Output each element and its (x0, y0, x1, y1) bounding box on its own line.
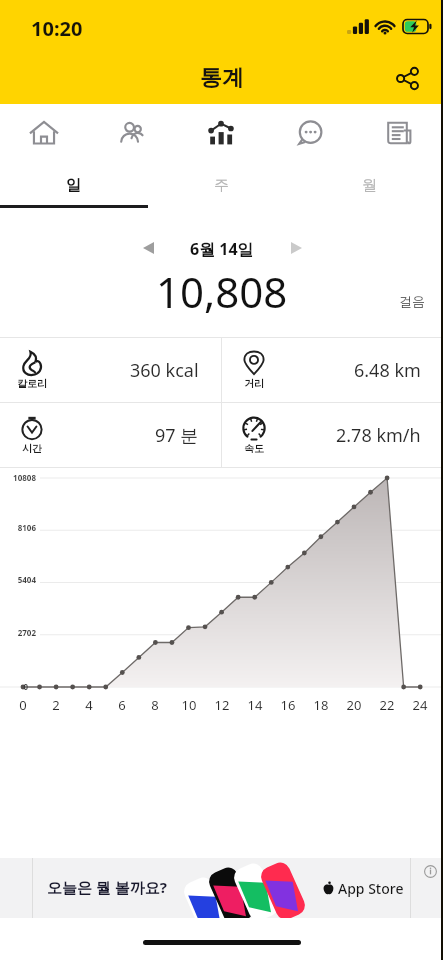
button[interactable]: 속도 (222, 403, 443, 467)
staticText: 2.78 km/h (336, 423, 421, 448)
button[interactable]: 시간 (0, 403, 221, 467)
staticText: 6월 14일 (190, 238, 254, 260)
staticText: 12 (208, 696, 236, 714)
staticText: 오늘은 뭘 볼까요? (47, 877, 167, 897)
staticText: 360 kcal (130, 358, 199, 383)
staticText: 2 (42, 696, 70, 714)
staticText: 거리 (244, 377, 264, 390)
staticText: 10808 (0, 472, 36, 483)
staticText: 24 (406, 696, 434, 714)
staticText: 6 (108, 696, 136, 714)
staticText: 시간 (22, 442, 42, 455)
staticText: 4 (75, 696, 103, 714)
staticText: 97 분 (155, 423, 199, 448)
button[interactable]: Ad info (422, 863, 438, 879)
staticText: 통계 (200, 64, 244, 92)
staticText: 8 (141, 696, 169, 714)
button[interactable]: 칼로리 (0, 338, 221, 402)
staticText: 5404 (0, 574, 36, 585)
staticText: 월 (362, 176, 377, 195)
button[interactable]: 거리 (222, 338, 443, 402)
staticText: 6.48 km (354, 358, 421, 383)
button[interactable]: Home (0, 104, 88, 162)
staticText: 8106 (0, 522, 36, 533)
staticText: 22 (373, 696, 401, 714)
staticText: App Store (338, 879, 404, 898)
staticText: 20 (340, 696, 368, 714)
staticText: 주 (214, 176, 229, 195)
staticText: 0 (0, 681, 28, 692)
staticText: 10:20 (31, 15, 83, 42)
staticText: 일 (66, 176, 81, 195)
staticText: 칼로리 (17, 377, 47, 390)
staticText: 2702 (0, 627, 36, 638)
staticText: 속도 (244, 442, 264, 455)
staticText: 걸음 (399, 293, 425, 309)
button[interactable]: Friends (88, 104, 176, 162)
button[interactable]: Stats (176, 104, 265, 162)
button[interactable]: Previous day (128, 228, 168, 268)
button[interactable]: News (354, 104, 443, 162)
staticText: 18 (307, 696, 335, 714)
staticText: 16 (274, 696, 302, 714)
staticText: 10 (175, 696, 203, 714)
button[interactable]: 오늘은 뭘 볼까요? (0, 858, 443, 918)
button[interactable]: 주 (147, 162, 295, 208)
button[interactable]: Next day (276, 228, 316, 268)
button[interactable]: 월 (295, 162, 443, 208)
staticText: 14 (241, 696, 269, 714)
staticText: 10,808 (156, 263, 288, 320)
button[interactable]: Share (385, 56, 429, 100)
button[interactable]: 일 (0, 162, 147, 208)
button[interactable]: Chat (265, 104, 354, 162)
staticText: 0 (9, 696, 37, 714)
